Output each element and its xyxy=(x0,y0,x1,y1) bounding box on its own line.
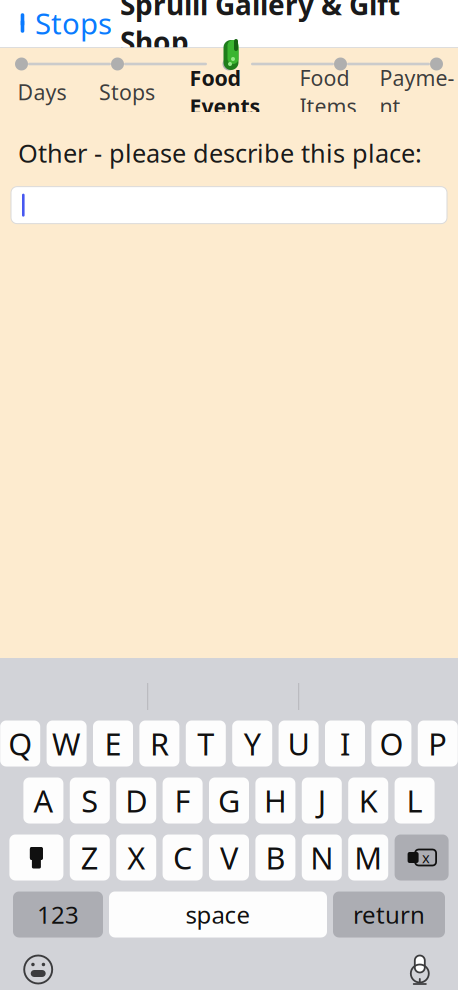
button[interactable]: Shift xyxy=(9,834,63,880)
staticText: B xyxy=(265,837,285,878)
button[interactable]: B xyxy=(255,834,295,880)
button[interactable]: E xyxy=(93,720,133,766)
button[interactable]: C xyxy=(163,834,203,880)
staticText: G xyxy=(218,780,240,821)
staticText: A xyxy=(33,780,53,821)
staticText: H xyxy=(264,780,287,821)
button[interactable]: S xyxy=(70,777,110,823)
staticText: W xyxy=(52,723,81,764)
button[interactable]: Z xyxy=(70,834,110,880)
staticText: Days xyxy=(17,78,66,106)
staticText: I xyxy=(340,723,350,764)
staticText: M xyxy=(354,837,382,878)
button[interactable]: O xyxy=(371,720,411,766)
staticText: N xyxy=(310,837,333,878)
button[interactable]: J xyxy=(302,777,342,823)
button[interactable]: W xyxy=(47,720,87,766)
staticText: L xyxy=(407,780,423,821)
button[interactable]: M xyxy=(348,834,388,880)
staticText: 123 xyxy=(37,899,79,930)
button[interactable]: Emoji xyxy=(15,947,61,990)
button[interactable]: V xyxy=(209,834,249,880)
staticText: Spruill Gallery & Gift Shop xyxy=(120,0,400,60)
button[interactable]: Y xyxy=(232,720,272,766)
staticText: x xyxy=(422,848,430,867)
button[interactable]: space xyxy=(109,891,327,937)
staticText: R xyxy=(150,723,169,764)
staticText: space xyxy=(185,899,250,930)
button[interactable]: 123 xyxy=(13,891,103,937)
button[interactable]: L xyxy=(395,777,435,823)
staticText: S xyxy=(81,780,98,821)
button[interactable]: A xyxy=(23,777,63,823)
button[interactable]: T xyxy=(186,720,226,766)
button[interactable]: K xyxy=(348,777,388,823)
button[interactable]: R xyxy=(139,720,179,766)
staticText: Z xyxy=(81,837,99,878)
staticText: C xyxy=(173,837,192,878)
staticText: V xyxy=(220,837,238,878)
button[interactable]: Describe this place xyxy=(11,187,447,224)
staticText: Y xyxy=(244,723,261,764)
button[interactable]: P xyxy=(418,720,458,766)
staticText: Payment xyxy=(379,64,454,120)
staticText: X xyxy=(127,837,145,878)
button[interactable]: Q xyxy=(0,720,40,766)
staticText: Q xyxy=(8,723,32,764)
button[interactable]: X xyxy=(116,834,156,880)
button[interactable]: Dictation xyxy=(397,947,443,990)
staticText: return xyxy=(353,899,425,930)
staticText: E xyxy=(104,723,121,764)
staticText: F xyxy=(175,780,191,821)
staticText: Other - please describe this place: xyxy=(18,136,422,170)
staticText: Stops xyxy=(35,3,112,42)
button[interactable]: H xyxy=(255,777,295,823)
button[interactable]: Stops xyxy=(0,0,120,47)
button[interactable]: U xyxy=(279,720,319,766)
button[interactable]: G xyxy=(209,777,249,823)
staticText: Food Items xyxy=(299,64,356,120)
staticText: Food Events xyxy=(189,64,260,120)
button[interactable]: Delete xyxy=(395,834,449,880)
button[interactable]: F xyxy=(163,777,203,823)
button[interactable]: D xyxy=(116,777,156,823)
staticText: U xyxy=(288,723,310,764)
staticText: T xyxy=(197,723,214,764)
staticText: P xyxy=(428,723,447,764)
button[interactable]: N xyxy=(302,834,342,880)
staticText: D xyxy=(125,780,147,821)
staticText: O xyxy=(379,723,403,764)
staticText: J xyxy=(318,780,326,821)
staticText: K xyxy=(359,780,378,821)
button[interactable]: I xyxy=(325,720,365,766)
button[interactable]: return xyxy=(333,891,445,937)
staticText: Stops xyxy=(99,78,155,106)
